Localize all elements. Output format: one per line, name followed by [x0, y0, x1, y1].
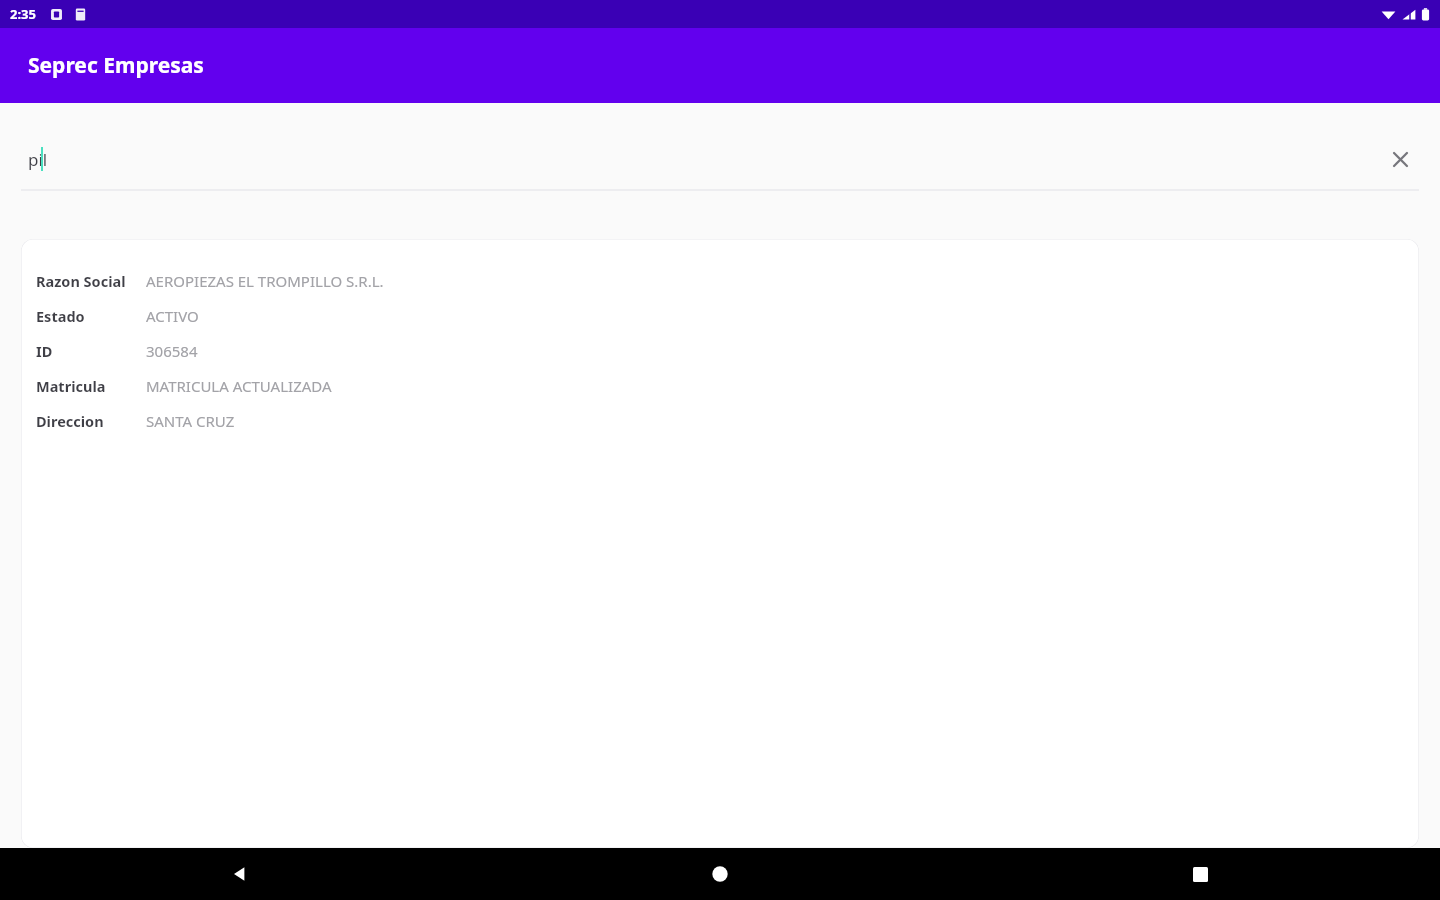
staticText: Seprec Empresas: [28, 51, 204, 80]
staticText: 306584: [146, 341, 198, 361]
staticText: Direccion: [36, 411, 104, 431]
staticText: 2:35: [10, 5, 36, 23]
staticText: AEROPIEZAS EL TROMPILLO S.R.L.: [146, 271, 384, 291]
button[interactable]: Razon Social: [21, 239, 1419, 848]
staticText: Estado: [36, 306, 85, 326]
button[interactable]: Clear search: [1378, 137, 1422, 181]
staticText: SANTA CRUZ: [146, 411, 235, 431]
button[interactable]: Home: [480, 848, 960, 900]
button[interactable]: Back: [0, 848, 480, 900]
staticText: Matricula: [36, 376, 106, 396]
button[interactable]: Recent apps: [960, 848, 1440, 900]
staticText: pil: [28, 148, 48, 171]
staticText: ACTIVO: [146, 306, 199, 326]
staticText: MATRICULA ACTUALIZADA: [146, 376, 332, 396]
staticText: Razon Social: [36, 271, 126, 291]
staticText: ID: [36, 341, 53, 361]
